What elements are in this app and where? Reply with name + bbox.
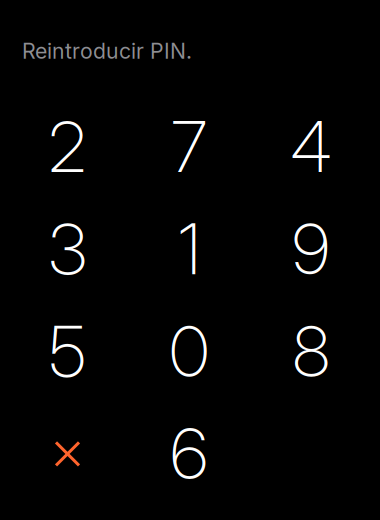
staticText: 0 [169,310,209,393]
button[interactable]: 3 [7,198,128,300]
staticText: Reintroducir PIN. [22,38,192,64]
staticText: 7 [171,105,207,189]
button[interactable]: 7 [128,95,250,198]
button[interactable]: Delete [7,403,128,505]
staticText: 8 [293,310,330,393]
button[interactable]: 6 [128,403,250,505]
button[interactable]: 5 [7,300,128,403]
staticText: 1 [178,207,200,291]
staticText: 5 [49,310,86,393]
staticText: 4 [291,105,332,189]
staticText: 2 [48,105,86,189]
button[interactable]: 4 [250,95,372,198]
staticText: 9 [292,207,330,291]
button[interactable]: 9 [250,198,372,300]
button[interactable]: 8 [250,300,372,403]
button[interactable]: 0 [128,300,250,403]
staticText: 6 [170,412,208,496]
button[interactable]: 1 [128,198,250,300]
staticText: 3 [48,207,86,291]
button[interactable]: 2 [7,95,128,198]
